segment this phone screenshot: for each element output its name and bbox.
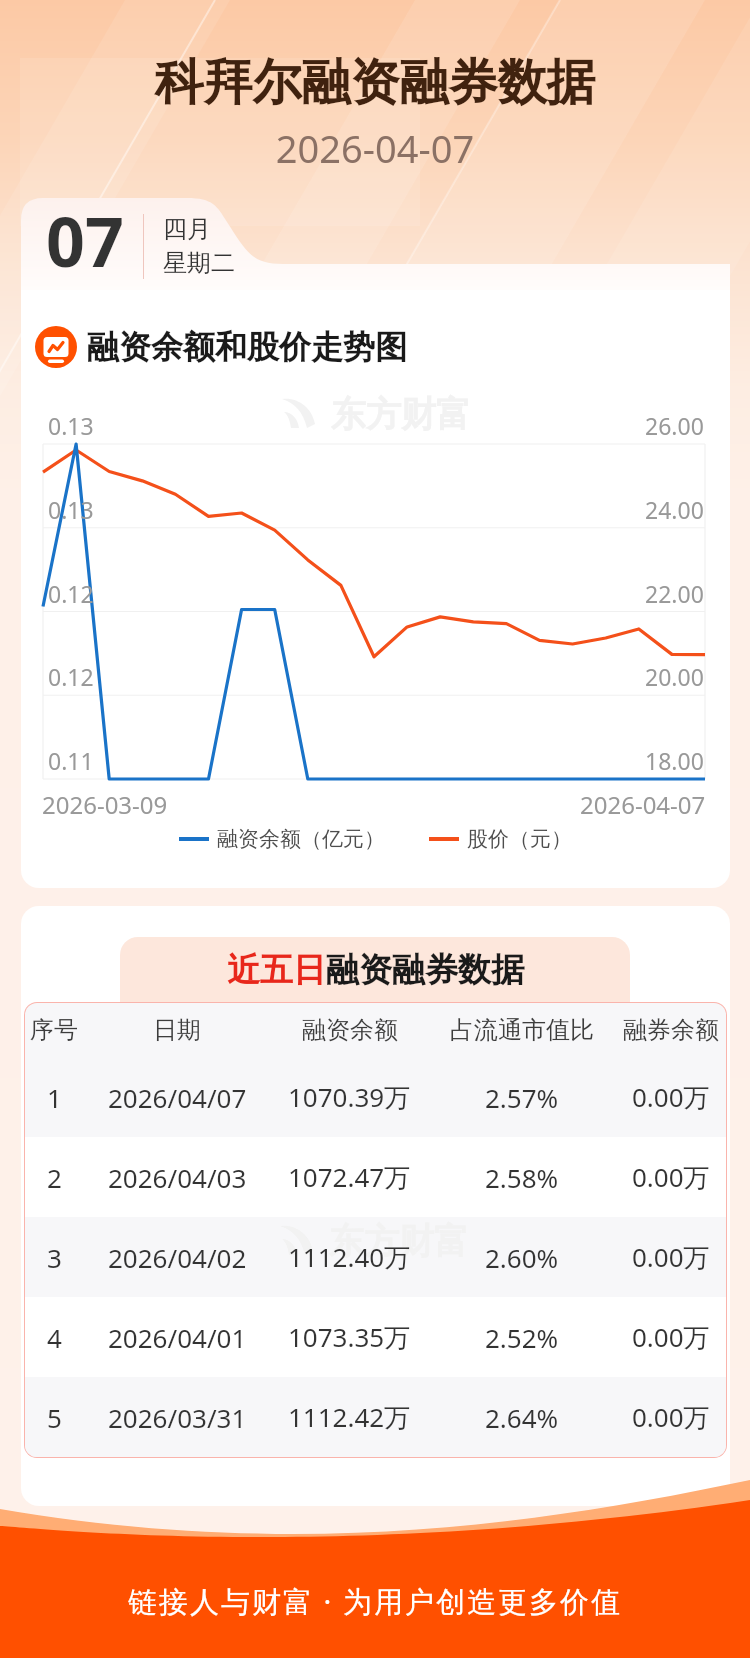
staticText: 2026/03/31 (108, 1400, 247, 1435)
staticText: 0.11 (48, 745, 94, 776)
staticText: 2026/04/02 (108, 1240, 247, 1275)
staticText: 2026/04/03 (108, 1160, 247, 1195)
staticText: 融券余额 (623, 1015, 719, 1045)
button[interactable]: 2 (25, 1137, 726, 1217)
staticText: 24.00 (645, 494, 704, 525)
staticText: 1 (47, 1080, 62, 1115)
staticText: 0.00万 (632, 1079, 710, 1115)
staticText: 链接人与财富 · 为用户创造更多价值 (0, 1581, 750, 1621)
staticText: 东方财富 (329, 1219, 469, 1259)
staticText: 1112.42万 (288, 1399, 411, 1435)
staticText: 0.13 (48, 494, 94, 525)
staticText: 2.60% (485, 1240, 559, 1275)
staticText: 占流通市值比 (450, 1015, 594, 1045)
other: 融资余额和股价走势图 (35, 326, 77, 368)
staticText: 0.00万 (632, 1159, 710, 1195)
staticText: 四月 (163, 214, 211, 244)
staticText: 2.57% (485, 1080, 559, 1115)
button[interactable]: 3 (25, 1217, 726, 1297)
staticText: 2.52% (485, 1320, 559, 1355)
staticText: 星期二 (163, 248, 235, 278)
staticText: 0.00万 (632, 1319, 710, 1355)
staticText: 科拜尔融资融券数据 (0, 52, 750, 114)
staticText: 1112.40万 (288, 1239, 411, 1275)
staticText: 0.12 (48, 578, 94, 609)
staticText: 4 (47, 1320, 62, 1355)
staticText: 07 (46, 194, 124, 287)
staticText: 2026/04/01 (108, 1320, 247, 1355)
staticText: 2.58% (485, 1160, 559, 1195)
staticText: 2026-04-07 (0, 122, 750, 174)
staticText: 20.00 (645, 661, 704, 692)
staticText: 1073.35万 (288, 1319, 411, 1355)
button[interactable]: 融资余额和股价走势图 (35, 326, 407, 368)
staticText: 2026-04-07 (580, 788, 706, 821)
staticText: 东方财富 (331, 392, 471, 432)
staticText: 融资余额 (302, 1015, 398, 1045)
staticText: 0.00万 (632, 1239, 710, 1275)
staticText: 融资余额（亿元） (217, 826, 385, 852)
staticText: 2026-03-09 (42, 788, 168, 821)
staticText: 日期 (153, 1015, 201, 1045)
staticText: 2026/04/07 (108, 1080, 247, 1115)
staticText: 序号 (30, 1015, 78, 1045)
staticText: 2 (47, 1160, 62, 1195)
staticText: 0.00万 (632, 1399, 710, 1435)
staticText: 22.00 (645, 578, 704, 609)
button[interactable]: 4 (25, 1297, 726, 1377)
staticText: 1072.47万 (288, 1159, 411, 1195)
staticText: 0.13 (48, 410, 94, 441)
staticText: 3 (47, 1240, 62, 1275)
staticText: 股价（元） (467, 826, 572, 852)
staticText: 近五日融资融券数据 (227, 949, 524, 991)
staticText: 融资余额和股价走势图 (87, 327, 407, 367)
staticText: 2.64% (485, 1400, 559, 1435)
staticText: 26.00 (645, 410, 704, 441)
staticText: 0.12 (48, 661, 94, 692)
button[interactable]: 1 (25, 1057, 726, 1137)
staticText: 1070.39万 (288, 1079, 411, 1115)
staticText: 18.00 (645, 745, 704, 776)
button[interactable]: 5 (25, 1377, 726, 1457)
staticText: 5 (47, 1400, 62, 1435)
